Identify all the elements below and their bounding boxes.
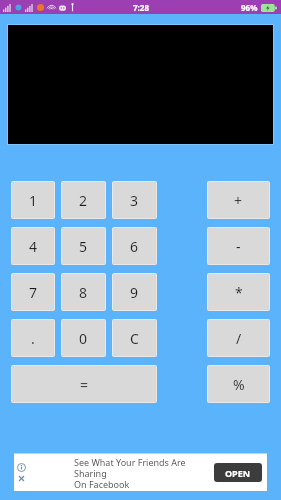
staticText: = xyxy=(80,375,89,394)
button[interactable]: Ad information xyxy=(14,454,267,491)
button[interactable]: 0 xyxy=(62,320,105,356)
staticText: 4 xyxy=(29,237,38,256)
staticText: 0 xyxy=(79,329,88,348)
button[interactable]: = xyxy=(12,366,156,402)
staticText: % xyxy=(233,375,245,394)
staticText: 1 xyxy=(29,191,38,210)
button[interactable]: Close ad xyxy=(17,474,26,483)
staticText: 7:28 xyxy=(133,2,149,13)
button[interactable]: C xyxy=(113,320,156,356)
button[interactable]: 7 xyxy=(12,274,54,310)
staticText: 9 xyxy=(130,283,139,302)
button[interactable]: % xyxy=(208,366,269,402)
button[interactable]: 1 xyxy=(12,182,54,218)
button[interactable]: 4 xyxy=(12,228,54,264)
staticText: 8 xyxy=(79,283,88,302)
button[interactable]: / xyxy=(208,320,269,356)
button[interactable]: + xyxy=(208,182,269,218)
button[interactable]: OPEN xyxy=(214,463,262,482)
staticText: OPEN xyxy=(225,467,251,479)
staticText: 6 xyxy=(130,237,139,256)
button[interactable]: * xyxy=(208,274,269,310)
staticText: + xyxy=(234,191,243,210)
button[interactable]: 8 xyxy=(62,274,105,310)
staticText: 5 xyxy=(79,237,88,256)
staticText: 3 xyxy=(130,191,139,210)
staticText: 7 xyxy=(29,283,38,302)
staticText: 96% xyxy=(241,2,258,13)
button[interactable]: 5 xyxy=(62,228,105,264)
staticText: See What Your Friends Are Sharing On Fac… xyxy=(74,456,213,490)
button[interactable]: - xyxy=(208,228,269,264)
button[interactable]: 6 xyxy=(113,228,156,264)
staticText: * xyxy=(235,283,243,302)
button[interactable]: 3 xyxy=(113,182,156,218)
staticText: . xyxy=(31,329,35,348)
button[interactable]: Ad information xyxy=(17,463,26,472)
button[interactable]: 2 xyxy=(62,182,105,218)
staticText: / xyxy=(236,329,242,348)
button[interactable]: 9 xyxy=(113,274,156,310)
staticText: C xyxy=(130,329,139,348)
button[interactable]: . xyxy=(12,320,54,356)
staticText: - xyxy=(236,237,241,256)
staticText: 2 xyxy=(79,191,88,210)
